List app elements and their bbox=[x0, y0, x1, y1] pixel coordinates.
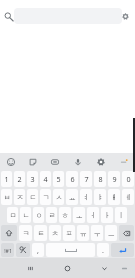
button[interactable]: 9 bbox=[108, 171, 120, 187]
button[interactable]: ㅏ bbox=[101, 207, 113, 223]
button[interactable]: Hide keyboard bbox=[115, 259, 133, 277]
staticText: ㅈ bbox=[16, 193, 24, 202]
button[interactable]: ㅌ bbox=[34, 225, 47, 241]
button[interactable]: shift bbox=[1, 225, 17, 241]
staticText: 1 bbox=[4, 174, 9, 184]
staticText: ㅗ bbox=[75, 211, 83, 220]
staticText: ㅡ bbox=[107, 229, 115, 238]
button[interactable]: ㄷ bbox=[27, 189, 38, 205]
button[interactable]: 7 bbox=[80, 171, 92, 187]
button[interactable]: ㅜ bbox=[91, 225, 103, 241]
staticText: ㄹ bbox=[48, 211, 56, 220]
button[interactable]: 8 bbox=[94, 171, 106, 187]
button[interactable]: ㅕ bbox=[80, 189, 92, 205]
button[interactable]: ㅂ bbox=[1, 189, 12, 205]
button[interactable]: ㄱ bbox=[40, 189, 51, 205]
staticText: ㅐ bbox=[110, 193, 118, 202]
staticText: . bbox=[102, 245, 104, 255]
staticText: ㅎ bbox=[61, 211, 69, 220]
button[interactable]: , bbox=[32, 243, 44, 257]
button[interactable]: space bbox=[46, 243, 95, 257]
button[interactable]: Search bbox=[2, 10, 15, 23]
staticText: 4 bbox=[43, 174, 48, 184]
button[interactable]: lang bbox=[16, 243, 30, 257]
staticText: ㅌ bbox=[37, 229, 45, 238]
button[interactable]: 3 bbox=[27, 171, 38, 187]
button[interactable]: 6 bbox=[66, 171, 78, 187]
staticText: ㄷ bbox=[29, 193, 37, 202]
button[interactable]: . bbox=[97, 243, 109, 257]
button[interactable]: More options bbox=[112, 153, 135, 170]
button[interactable]: 5 bbox=[53, 171, 64, 187]
staticText: 9 bbox=[112, 174, 117, 184]
staticText: 6 bbox=[70, 174, 75, 184]
button[interactable]: ㅋ bbox=[19, 225, 32, 241]
button[interactable]: ㅇ bbox=[33, 207, 44, 223]
staticText: ㅣ bbox=[117, 211, 125, 220]
button[interactable]: Emoji bbox=[0, 153, 22, 170]
button[interactable]: ㅁ bbox=[7, 207, 18, 223]
button[interactable]: ㅅ bbox=[53, 189, 64, 205]
staticText: 2 bbox=[17, 174, 22, 184]
button[interactable]: 2 bbox=[14, 171, 25, 187]
button[interactable]: del bbox=[119, 225, 134, 241]
staticText: 0 bbox=[126, 174, 131, 184]
button[interactable]: 0 bbox=[122, 171, 134, 187]
staticText: ㅛ bbox=[68, 193, 76, 202]
staticText: 7 bbox=[84, 174, 89, 184]
button[interactable]: ㅈ bbox=[14, 189, 25, 205]
staticText: ㅊ bbox=[51, 229, 59, 238]
staticText: 3 bbox=[30, 174, 35, 184]
button[interactable]: Back bbox=[95, 259, 113, 277]
button[interactable]: ㅎ bbox=[59, 207, 71, 223]
button[interactable]: ㅍ bbox=[63, 225, 75, 241]
button[interactable]: ㅛ bbox=[66, 189, 78, 205]
button[interactable]: Recent apps bbox=[21, 259, 39, 277]
staticText: ㅑ bbox=[96, 193, 104, 202]
button[interactable]: ㄹ bbox=[46, 207, 57, 223]
staticText: ㅅ bbox=[55, 193, 63, 202]
staticText: ㅜ bbox=[93, 229, 101, 238]
staticText: ㅕ bbox=[82, 193, 90, 202]
button[interactable]: Voice input bbox=[66, 153, 89, 170]
button[interactable]: ㅑ bbox=[94, 189, 106, 205]
staticText: ㄱ bbox=[42, 193, 50, 202]
button[interactable]: ㄴ bbox=[20, 207, 31, 223]
staticText: 8 bbox=[98, 174, 103, 184]
button[interactable]: 4 bbox=[40, 171, 51, 187]
button[interactable]: ㅠ bbox=[77, 225, 89, 241]
staticText: , bbox=[37, 245, 39, 255]
button[interactable]: 1 bbox=[1, 171, 12, 187]
staticText: ㅓ bbox=[89, 211, 97, 220]
button[interactable]: Keyboard settings bbox=[89, 153, 112, 170]
staticText: ㅍ bbox=[65, 229, 73, 238]
button[interactable]: ㅗ bbox=[73, 207, 85, 223]
button[interactable]: ㅡ bbox=[105, 225, 117, 241]
staticText: !#1 bbox=[4, 247, 12, 254]
staticText: ㅠ bbox=[79, 229, 87, 238]
button[interactable]: !#1 bbox=[1, 243, 14, 257]
button[interactable]: ㅣ bbox=[115, 207, 127, 223]
button[interactable]: Home bbox=[58, 259, 76, 277]
button[interactable]: GIF bbox=[44, 153, 66, 170]
button[interactable]: enter bbox=[111, 243, 134, 257]
staticText: ㅁ bbox=[9, 211, 17, 220]
button[interactable]: ㅓ bbox=[87, 207, 99, 223]
button[interactable]: Settings bbox=[119, 10, 132, 23]
staticText: 5 bbox=[56, 174, 61, 184]
button[interactable]: ㅐ bbox=[108, 189, 120, 205]
button[interactable]: ㅊ bbox=[49, 225, 61, 241]
staticText: ㅏ bbox=[103, 211, 111, 220]
staticText: ㄴ bbox=[22, 211, 30, 220]
staticText: ㅇ bbox=[35, 211, 43, 220]
staticText: ㅔ bbox=[124, 193, 132, 202]
button[interactable]: ㅔ bbox=[122, 189, 134, 205]
staticText: ㅂ bbox=[3, 193, 11, 202]
button[interactable]: Stickers bbox=[22, 153, 44, 170]
staticText: ㅋ bbox=[22, 229, 30, 238]
